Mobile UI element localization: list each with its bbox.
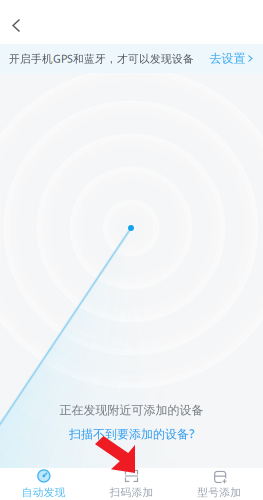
button[interactable]: 扫描不到要添加的设备? — [63, 424, 200, 444]
staticText: 自动发现 — [22, 486, 66, 499]
staticText: 正在发现附近可添加的设备 — [59, 403, 203, 418]
staticText: 开启手机GPS和蓝牙，才可以发现设备 — [9, 51, 194, 66]
button[interactable]: 扫码添加 — [88, 468, 175, 500]
button[interactable]: 去设置 — [207, 44, 254, 73]
button[interactable]: Back — [0, 0, 37, 44]
staticText: 扫描不到要添加的设备? — [69, 426, 194, 442]
button[interactable]: 型号添加 — [175, 468, 263, 500]
staticText: 型号添加 — [197, 486, 241, 499]
staticText: 扫码添加 — [109, 486, 153, 499]
staticText: 去设置 — [209, 51, 245, 66]
button[interactable]: 自动发现 — [0, 468, 88, 500]
button[interactable]: Scan to add — [95, 436, 135, 473]
